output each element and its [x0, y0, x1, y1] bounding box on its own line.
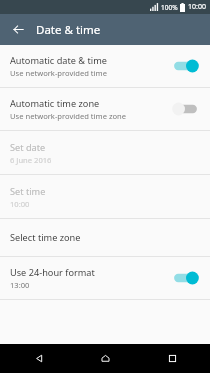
button[interactable]: Back — [0, 14, 36, 45]
staticText: Select time zone — [10, 231, 81, 244]
staticText: Automatic time zone — [10, 97, 100, 110]
staticText: 100% — [161, 3, 178, 12]
staticText: Date & time — [36, 22, 101, 38]
staticText: Set time — [10, 185, 46, 198]
button[interactable]: Select time zone — [0, 219, 210, 256]
button[interactable]: Switch on — [172, 270, 202, 286]
staticText: Automatic date & time — [10, 54, 107, 67]
button[interactable]: Automatic date & time — [0, 45, 210, 87]
button[interactable]: Switch on — [172, 58, 202, 74]
staticText: Use network-provided time — [10, 68, 107, 78]
staticText: Use 24-hour format — [10, 266, 95, 279]
staticText: 13:00 — [10, 280, 30, 290]
staticText: 10:00 — [10, 199, 30, 209]
button[interactable]: Home — [77, 344, 133, 373]
button[interactable]: Switch off — [172, 101, 202, 117]
staticText: 10:00 — [188, 2, 206, 12]
button[interactable]: Set date — [0, 131, 210, 174]
button[interactable]: Set time — [0, 175, 210, 218]
staticText: 6 June 2016 — [10, 155, 52, 165]
staticText: Use network-provided time zone — [10, 111, 127, 121]
button[interactable]: Automatic time zone — [0, 88, 210, 130]
button[interactable]: Recent apps — [144, 344, 200, 373]
button[interactable]: Use 24-hour format — [0, 257, 210, 299]
staticText: Set date — [10, 141, 46, 154]
button[interactable]: Back — [11, 344, 67, 373]
